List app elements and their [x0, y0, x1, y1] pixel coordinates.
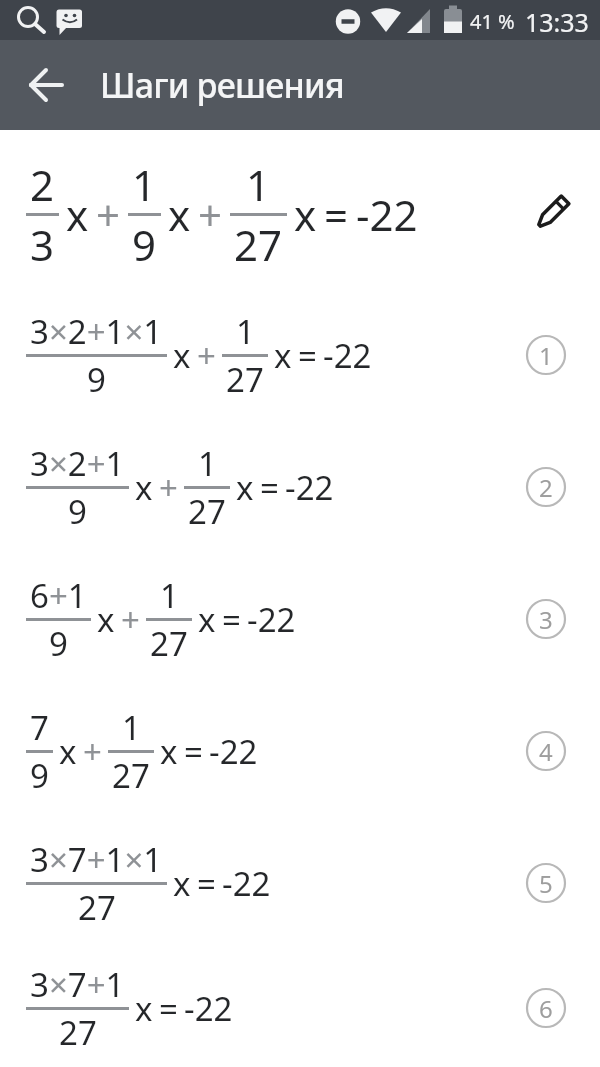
staticText: -22: [209, 729, 258, 774]
staticText: 9: [49, 621, 68, 666]
staticText: 6+1: [30, 573, 87, 618]
button[interactable]: [524, 185, 580, 241]
staticText: x: [173, 861, 191, 906]
staticText: -22: [323, 333, 372, 378]
staticText: 27: [226, 357, 264, 402]
staticText: 2: [30, 156, 55, 213]
staticText: 1: [198, 441, 217, 486]
staticText: 27: [188, 489, 226, 534]
staticText: 5: [539, 867, 553, 900]
staticText: +: [159, 465, 178, 510]
staticText: 41 %: [470, 8, 515, 35]
staticText: x: [168, 186, 191, 243]
staticText: -22: [247, 597, 296, 642]
staticText: x: [66, 186, 89, 243]
staticText: 13:33: [525, 5, 589, 39]
staticText: 9: [30, 753, 49, 798]
staticText: =: [298, 333, 317, 378]
staticText: =: [222, 597, 241, 642]
staticText: x: [236, 465, 254, 510]
button[interactable]: 7: [0, 685, 600, 817]
staticText: =: [197, 861, 216, 906]
staticText: =: [324, 186, 349, 243]
staticText: +: [83, 729, 102, 774]
staticText: +: [121, 597, 140, 642]
staticText: 9: [132, 216, 157, 273]
staticText: +: [198, 186, 223, 243]
staticText: 1: [246, 156, 271, 213]
button[interactable]: [13, 40, 81, 130]
staticText: -22: [222, 861, 271, 906]
button[interactable]: 3×2+1×1: [0, 289, 600, 421]
staticText: 1: [132, 156, 157, 213]
button[interactable]: 6+1: [0, 553, 600, 685]
staticText: 9: [87, 357, 106, 402]
staticText: x: [59, 729, 77, 774]
staticText: x: [173, 333, 191, 378]
staticText: 3: [30, 216, 55, 273]
staticText: x: [198, 597, 216, 642]
button[interactable]: 3×7+1: [0, 949, 600, 1067]
staticText: 7: [30, 705, 49, 750]
staticText: x: [97, 597, 115, 642]
staticText: 27: [59, 1010, 97, 1055]
staticText: -22: [184, 986, 233, 1031]
staticText: 3: [539, 603, 553, 636]
button[interactable]: 3×7+1×1: [0, 817, 600, 949]
staticText: +: [197, 333, 216, 378]
staticText: 2: [539, 471, 553, 504]
staticText: =: [159, 986, 178, 1031]
staticText: x: [135, 986, 153, 1031]
staticText: 4: [539, 735, 553, 768]
staticText: 3×7+1: [30, 962, 125, 1007]
staticText: 27: [78, 885, 116, 930]
button[interactable]: 3×2+1: [0, 421, 600, 553]
button[interactable]: 2: [0, 130, 600, 289]
staticText: =: [260, 465, 279, 510]
staticText: 27: [234, 216, 283, 273]
staticText: 3×7+1×1: [30, 837, 163, 882]
staticText: 9: [68, 489, 87, 534]
staticText: -22: [356, 186, 418, 243]
staticText: 1: [160, 573, 179, 618]
staticText: 1: [122, 705, 141, 750]
staticText: 27: [150, 621, 188, 666]
staticText: x: [160, 729, 178, 774]
staticText: 1: [236, 309, 255, 354]
staticText: 3×2+1×1: [30, 309, 163, 354]
staticText: x: [294, 186, 317, 243]
staticText: 3×2+1: [30, 441, 125, 486]
staticText: x: [274, 333, 292, 378]
staticText: 6: [539, 992, 553, 1025]
staticText: 27: [112, 753, 150, 798]
staticText: x: [135, 465, 153, 510]
staticText: =: [184, 729, 203, 774]
staticText: Шаги решения: [100, 62, 344, 108]
staticText: 1: [539, 339, 553, 372]
staticText: -22: [285, 465, 334, 510]
staticText: +: [96, 186, 121, 243]
